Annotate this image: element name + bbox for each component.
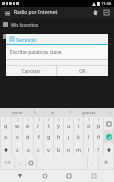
button[interactable]: Shift	[1, 143, 11, 156]
button[interactable]: gracias	[71, 108, 106, 116]
staticText: a	[4, 133, 8, 140]
staticText: ,	[19, 159, 21, 166]
button[interactable]: v	[44, 143, 53, 156]
staticText: 6	[58, 118, 60, 122]
button[interactable]: 9	[84, 117, 93, 130]
staticText: h	[57, 133, 61, 140]
staticText: 7	[68, 118, 70, 122]
button[interactable]: j	[64, 130, 73, 143]
button[interactable]: l	[84, 130, 93, 143]
staticText: o	[87, 122, 91, 129]
button[interactable]: n	[64, 143, 73, 156]
staticText: r	[37, 122, 40, 129]
button[interactable]: Navigation drawer	[3, 9, 11, 17]
button[interactable]: ,	[15, 156, 25, 169]
button[interactable]: Recents	[64, 171, 74, 181]
staticText: 0	[98, 118, 100, 122]
button[interactable]: Back	[15, 171, 25, 181]
button[interactable]: s	[12, 130, 22, 143]
staticText: ?	[97, 146, 100, 153]
button[interactable]: More suggestions	[106, 108, 114, 116]
button[interactable]: .	[88, 156, 98, 169]
staticText: 8	[78, 118, 80, 122]
button[interactable]: Emoji	[26, 156, 36, 169]
button[interactable]: a	[1, 130, 11, 143]
staticText: u	[67, 122, 71, 129]
staticText: b	[57, 146, 61, 153]
button[interactable]: 0	[94, 117, 103, 130]
button[interactable]: 2	[12, 117, 22, 130]
staticText: z	[16, 146, 19, 153]
staticText: t	[48, 122, 50, 129]
button[interactable]: 7	[64, 117, 73, 130]
button[interactable]: Voice input	[99, 156, 113, 169]
staticText: f	[38, 133, 40, 140]
staticText: g	[47, 133, 51, 140]
button[interactable]: Enter	[104, 130, 113, 143]
button[interactable]: b	[54, 143, 63, 156]
staticText: Emisoras de radio al inicio	[11, 34, 66, 40]
staticText: Radio por Internet	[14, 9, 58, 16]
button[interactable]: Home	[91, 8, 100, 17]
button[interactable]: Shift right	[104, 143, 113, 156]
staticText: !	[88, 146, 90, 153]
staticText: 9	[88, 118, 90, 122]
button[interactable]: Search	[102, 8, 111, 17]
staticText: y	[57, 122, 60, 129]
staticText: l	[88, 133, 90, 140]
button[interactable]: Backspace	[104, 117, 113, 130]
staticText: ⋮	[108, 109, 113, 115]
staticText: m	[76, 146, 82, 153]
button[interactable]: OK	[57, 66, 108, 76]
staticText: 4	[38, 118, 40, 122]
button[interactable]: evitar	[0, 108, 34, 116]
button[interactable]: k	[74, 130, 83, 143]
staticText: p	[97, 122, 101, 129]
button[interactable]: h	[54, 130, 63, 143]
staticText: e	[26, 122, 30, 129]
button[interactable]: !	[84, 143, 93, 156]
button[interactable]: 5	[44, 117, 53, 130]
staticText: ñ	[97, 133, 101, 140]
button[interactable]: 3	[23, 117, 33, 130]
button[interactable]: Mis favoritos	[0, 20, 114, 29]
button[interactable]: Emisoras de radio al inicio	[0, 32, 114, 41]
button[interactable]: Cancelar	[6, 66, 56, 76]
button[interactable]: z	[12, 143, 22, 156]
button[interactable]: 6	[54, 117, 63, 130]
staticText: d	[26, 133, 30, 140]
button[interactable]: d	[23, 130, 33, 143]
button[interactable]: x	[23, 143, 33, 156]
button[interactable]: Home	[40, 171, 50, 181]
button[interactable]: g	[44, 130, 53, 143]
staticText: w	[15, 122, 20, 129]
staticText: v	[47, 146, 50, 153]
staticText: j	[68, 133, 70, 140]
button[interactable]: Symbols	[1, 156, 14, 169]
button[interactable]: el	[35, 108, 70, 116]
button[interactable]: 8	[74, 117, 83, 130]
staticText: el	[51, 110, 55, 115]
button[interactable]: ñ	[94, 130, 103, 143]
staticText: gracias	[82, 110, 96, 115]
staticText: Servicio	[16, 36, 37, 43]
button[interactable]: ?	[94, 143, 103, 156]
staticText: OK	[79, 68, 86, 74]
staticText: i	[78, 122, 80, 129]
button[interactable]: 1	[1, 117, 11, 130]
staticText: Escribe palabras clave	[10, 49, 62, 56]
staticText: 3	[27, 118, 29, 122]
staticText: x	[27, 146, 30, 153]
button[interactable]: m	[74, 143, 83, 156]
button[interactable]: f	[34, 130, 43, 143]
button[interactable]: Escribe palabras clave	[6, 45, 108, 59]
button[interactable]: 4	[34, 117, 43, 130]
staticText: ?123	[4, 161, 11, 165]
staticText: .	[92, 159, 94, 166]
staticText: 5	[48, 118, 50, 122]
button[interactable]: Keyboard	[89, 171, 99, 181]
button[interactable]: c	[34, 143, 43, 156]
staticText: q	[4, 122, 8, 129]
staticText: Mis favoritos	[11, 22, 39, 28]
